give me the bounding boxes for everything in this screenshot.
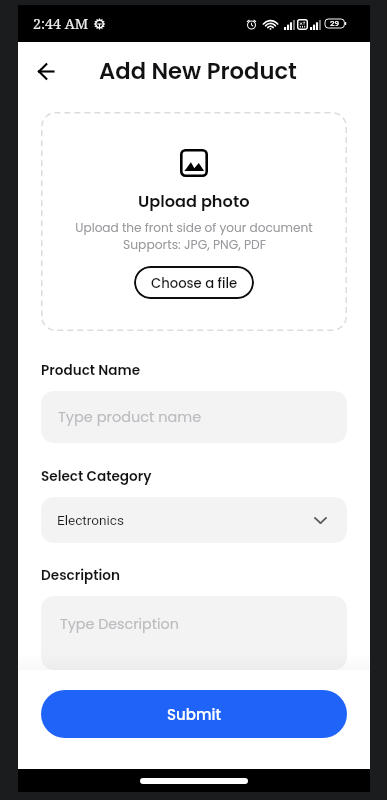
button[interactable]: Back	[30, 55, 62, 87]
staticText: Upload the front side of your document	[75, 219, 313, 236]
staticText: Select Category	[41, 467, 152, 486]
button[interactable]: Submit	[41, 690, 347, 738]
staticText: Description	[41, 566, 120, 585]
staticText: Choose a file	[151, 274, 238, 292]
staticText: Supports: JPG, PNG, PDF	[123, 236, 266, 253]
staticText: Add New Product	[99, 55, 297, 87]
staticText: Type product name	[58, 407, 202, 427]
button[interactable]: Choose a file	[134, 266, 254, 299]
staticText: Submit	[167, 704, 222, 725]
staticText: 2:44 AM	[33, 14, 89, 33]
button[interactable]: Type product name	[41, 391, 347, 443]
staticText: Type Description	[60, 614, 179, 634]
button[interactable]: Electronics	[41, 497, 347, 543]
staticText: Product Name	[41, 361, 141, 380]
button[interactable]: Type Description	[41, 596, 347, 670]
staticText: Upload photo	[138, 190, 250, 213]
staticText: Electronics	[57, 512, 124, 528]
staticText: 29	[330, 19, 340, 28]
